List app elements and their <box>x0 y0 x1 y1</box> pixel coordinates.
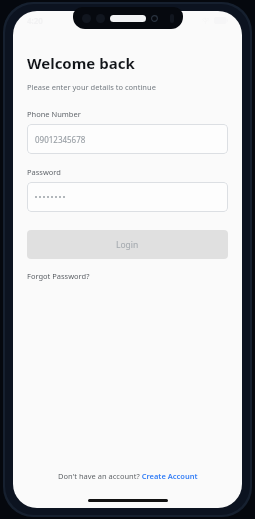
staticText: 4:20 <box>27 15 43 26</box>
staticText: Phone Number <box>27 109 81 119</box>
button[interactable]: Login <box>27 230 228 259</box>
button[interactable]: Don't have an account? Create Account <box>58 471 198 481</box>
staticText: Please enter your details to continue <box>27 82 156 92</box>
staticText: Forgot Password? <box>27 271 90 281</box>
button[interactable]: Forgot Password? <box>27 271 90 281</box>
button[interactable]: Password input <box>27 182 228 212</box>
staticText: Welcome back <box>27 53 135 73</box>
staticText: Password <box>27 167 61 177</box>
button[interactable]: 09012345678 <box>27 124 228 154</box>
staticText: Don't have an account? Create Account <box>58 471 198 481</box>
staticText: Login <box>116 239 139 251</box>
staticText: 09012345678 <box>35 134 86 145</box>
